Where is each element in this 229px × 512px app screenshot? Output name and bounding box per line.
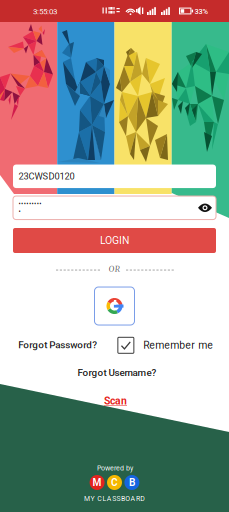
button[interactable]: Remember me [118,337,213,353]
staticText: 3:55:03 [33,7,57,16]
staticText: LOGIN [100,234,129,247]
staticText: M [93,477,102,488]
staticText: Powered by [97,464,133,472]
staticText: 33% [194,7,207,16]
staticText: Forgot Username? [77,367,156,378]
staticText: MY CLASSBOARD [84,494,145,503]
button[interactable]: Forgot Username? [77,367,156,378]
staticText: •••••••••• [18,200,41,216]
button[interactable]: Forgot Password? [18,336,108,354]
staticText: B [129,477,135,488]
staticText: 23CWSD0120 [18,171,74,182]
staticText: OR [108,264,120,275]
button[interactable]: Scan [104,395,127,407]
staticText: Scan [104,395,127,407]
staticText: C [111,477,118,488]
button[interactable]: Sign in with Google [94,287,134,325]
staticText: Forgot Password? [18,339,97,351]
staticText: Remember me [143,339,213,351]
button[interactable]: LOGIN [13,228,216,253]
